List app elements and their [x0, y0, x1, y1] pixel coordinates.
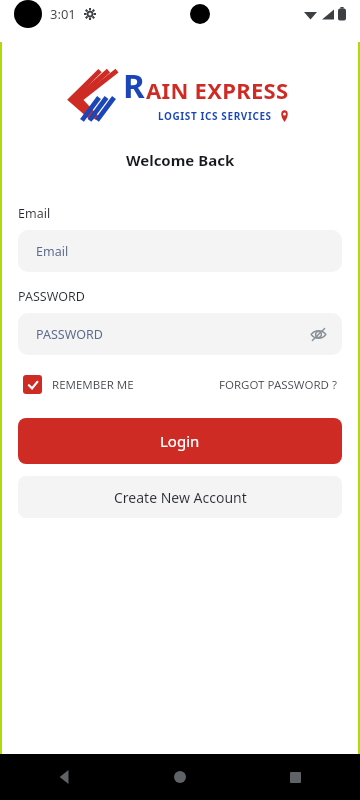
- button[interactable]: REMEMBER ME: [23, 375, 134, 394]
- staticText: 3:01: [50, 5, 76, 23]
- button[interactable]: Home: [165, 762, 195, 792]
- staticText: Login: [160, 431, 200, 451]
- staticText: Welcome Back: [126, 150, 235, 170]
- staticText: LOGIST ICS SERVICES: [158, 109, 272, 123]
- staticText: PASSWORD: [36, 326, 103, 343]
- staticText: Email: [18, 205, 51, 222]
- staticText: FORGOT PASSWORD ?: [219, 377, 337, 393]
- button[interactable]: Recents: [280, 762, 310, 792]
- staticText: R: [123, 63, 145, 108]
- staticText: Email: [36, 243, 69, 260]
- staticText: AIN EXPRESS: [146, 75, 289, 105]
- button[interactable]: PASSWORD: [18, 313, 342, 355]
- staticText: Create New Account: [114, 488, 247, 507]
- button[interactable]: Back: [50, 762, 80, 792]
- button[interactable]: FORGOT PASSWORD ?: [219, 377, 337, 393]
- staticText: REMEMBER ME: [52, 377, 134, 393]
- button[interactable]: Show password: [308, 324, 328, 344]
- button[interactable]: Email: [18, 230, 342, 272]
- button[interactable]: Login: [18, 418, 342, 464]
- button[interactable]: Create New Account: [18, 476, 342, 518]
- staticText: PASSWORD: [18, 288, 85, 305]
